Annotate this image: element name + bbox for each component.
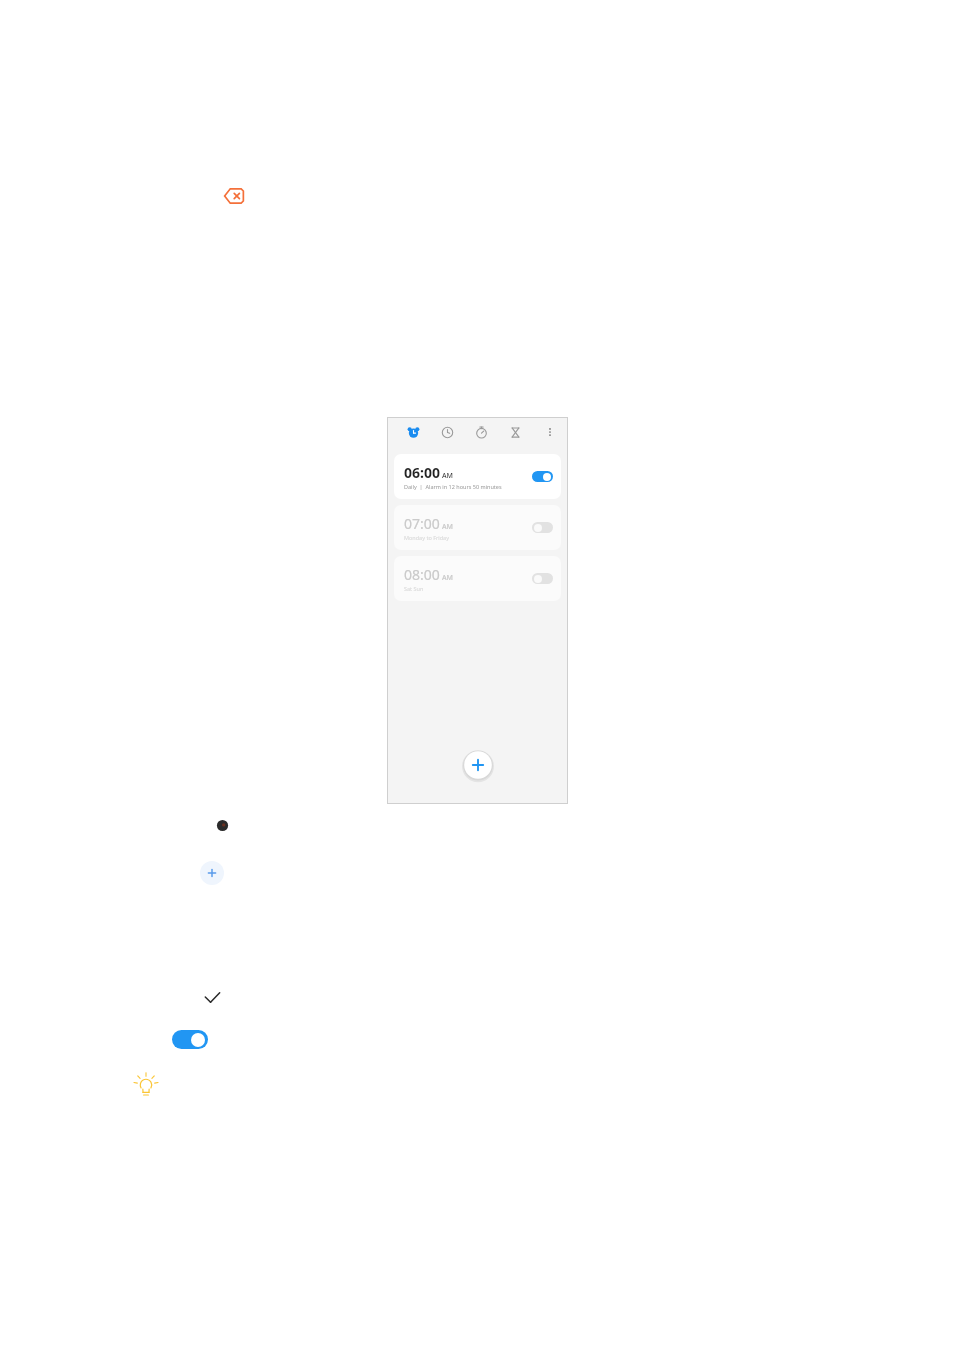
staticText: AM: [442, 471, 454, 481]
button[interactable]: Camera: [211, 814, 233, 836]
button[interactable]: Alarm off: [532, 522, 553, 533]
staticText: Sat Sun: [404, 585, 424, 592]
staticText: Daily | Alarm in 12 hours 50 minutes: [404, 483, 502, 490]
staticText: AM: [442, 573, 454, 583]
button[interactable]: 07:00: [394, 505, 561, 550]
button[interactable]: Alarm on: [532, 471, 553, 482]
button[interactable]: More options: [542, 424, 558, 440]
button[interactable]: Timer: [506, 423, 524, 441]
staticText: 07:00: [404, 514, 440, 533]
other: Tip: [133, 1072, 159, 1098]
staticText: Monday to Friday: [404, 534, 449, 541]
button[interactable]: Add alarm: [462, 749, 494, 781]
button[interactable]: 06:00: [394, 454, 561, 499]
button[interactable]: Toggle on: [172, 1030, 208, 1049]
button[interactable]: Backspace: [222, 184, 246, 208]
staticText: 06:00: [404, 463, 440, 482]
button[interactable]: 08:00: [394, 556, 561, 601]
button[interactable]: Stopwatch: [472, 423, 490, 441]
staticText: 08:00: [404, 565, 440, 584]
button[interactable]: Alarm off: [532, 573, 553, 584]
button[interactable]: Alarm: [404, 423, 422, 441]
staticText: AM: [442, 522, 454, 532]
button[interactable]: Add: [199, 860, 225, 886]
button[interactable]: World clock: [438, 423, 456, 441]
button[interactable]: Confirm: [200, 986, 224, 1010]
